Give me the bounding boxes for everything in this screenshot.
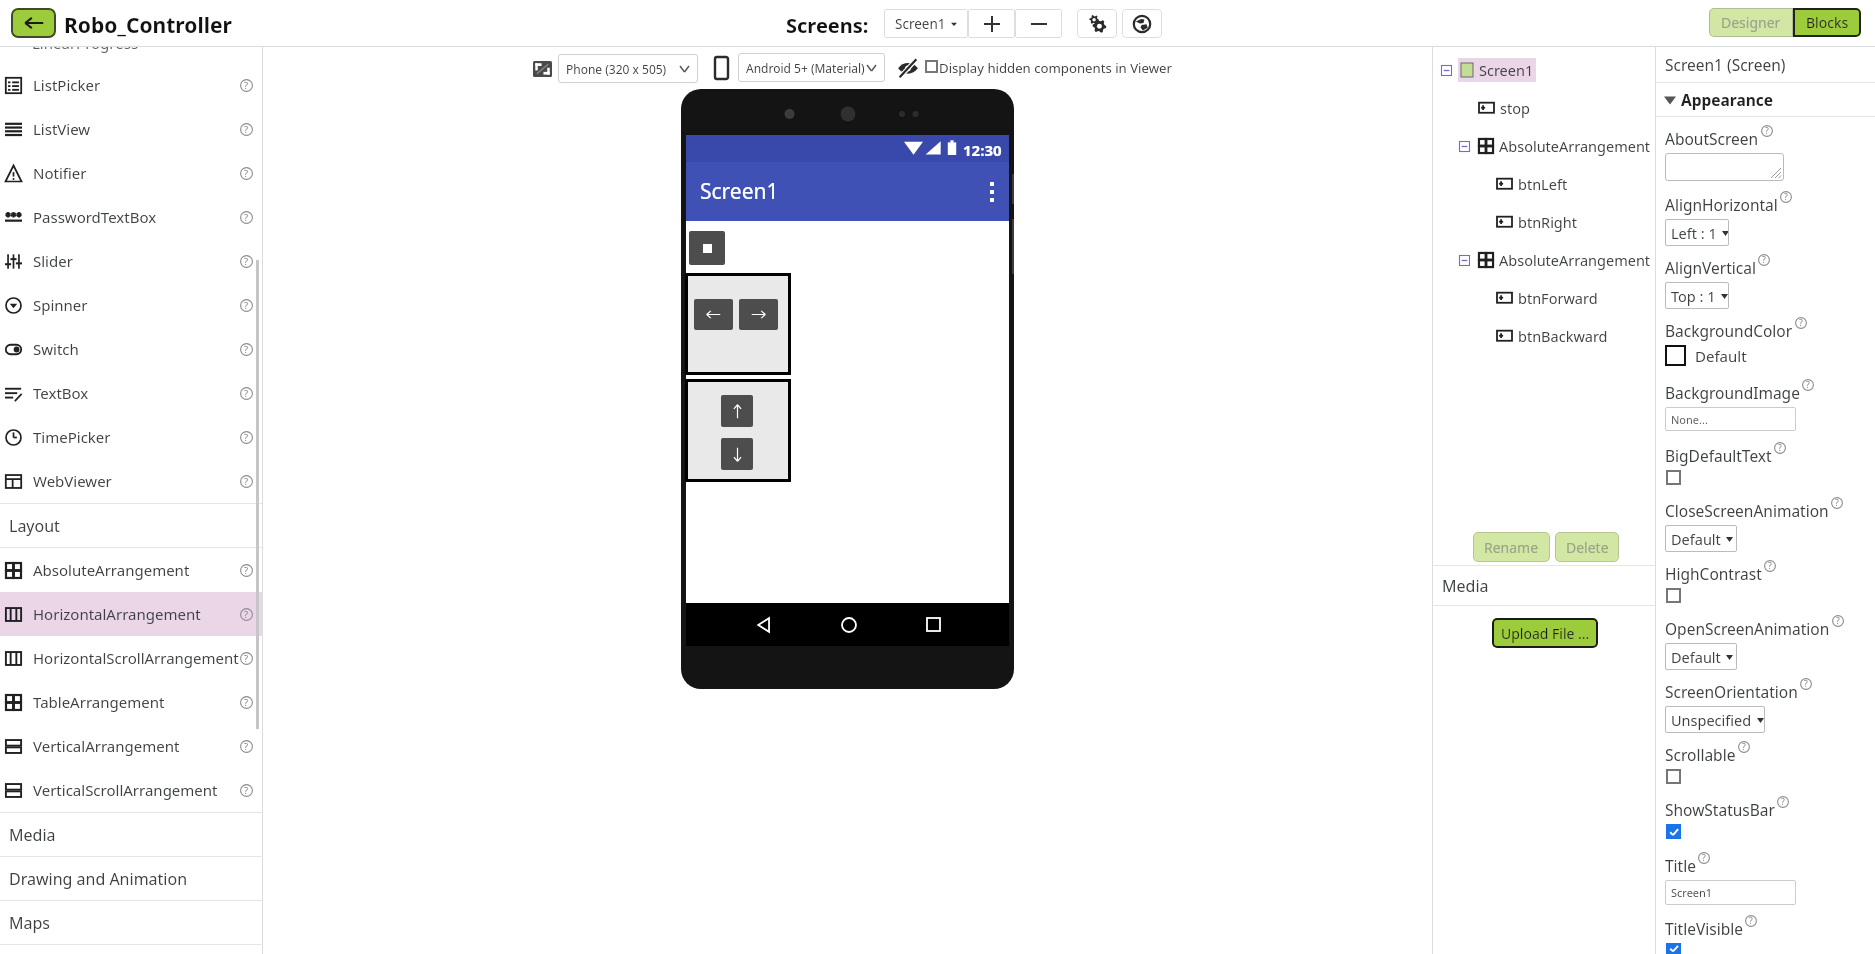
staticText: stop xyxy=(1500,98,1530,118)
button[interactable]: Delete xyxy=(1555,532,1619,562)
button[interactable]: left xyxy=(694,299,733,330)
staticText: Default xyxy=(1671,647,1721,667)
button[interactable]: globe xyxy=(1122,9,1162,38)
button[interactable]: toggle xyxy=(1666,769,1681,784)
button[interactable]: WebViewer xyxy=(0,459,262,503)
staticText: ? xyxy=(244,696,249,709)
staticText: ? xyxy=(1835,497,1839,509)
staticText: ? xyxy=(1768,560,1772,572)
button[interactable]: gear xyxy=(1077,9,1117,38)
button[interactable]: ListPicker xyxy=(0,63,262,107)
staticText: 12:30 xyxy=(963,140,1002,160)
button[interactable]: Layout xyxy=(0,504,262,547)
button[interactable]: Media xyxy=(0,813,262,856)
button[interactable]: toggle xyxy=(1666,943,1681,954)
staticText: Delete xyxy=(1566,538,1609,557)
button[interactable]: Spinner xyxy=(0,283,262,327)
staticText: Title xyxy=(1665,855,1696,876)
staticText: None... xyxy=(1671,412,1708,427)
staticText: HorizontalArrangement xyxy=(33,604,201,624)
staticText: Drawing and Animation xyxy=(9,868,188,890)
staticText: CloseScreenAnimation xyxy=(1665,500,1829,521)
staticText: ? xyxy=(1702,852,1706,864)
staticText: ? xyxy=(244,299,249,312)
button[interactable]: VerticalScrollArrangement xyxy=(0,768,262,812)
button[interactable]: right xyxy=(739,299,778,330)
button[interactable]: AbsoluteArrangement xyxy=(1433,127,1655,165)
button[interactable]: Unspecified xyxy=(1665,706,1765,733)
staticText: VerticalScrollArrangement xyxy=(33,780,218,800)
staticText: Screen1 xyxy=(1671,885,1713,900)
button[interactable]: minus xyxy=(1015,9,1062,38)
button[interactable]: btnForward xyxy=(1433,279,1655,317)
button[interactable]: Top : 1 xyxy=(1665,282,1729,309)
staticText: ? xyxy=(244,475,249,488)
button[interactable]: Screen1 xyxy=(1433,51,1655,89)
button[interactable]: up xyxy=(721,395,753,427)
staticText: Screens: xyxy=(786,12,869,39)
button[interactable]: btnBackward xyxy=(1433,317,1655,355)
staticText: Maps xyxy=(9,912,50,934)
staticText: Layout xyxy=(9,515,60,537)
button[interactable]: ListView xyxy=(0,107,262,151)
button[interactable]: Appearance xyxy=(1656,83,1875,116)
button[interactable]: Phone (320 x 505) xyxy=(558,54,698,83)
button[interactable]: Screen1 xyxy=(884,9,968,38)
button[interactable]: Back xyxy=(11,8,56,38)
other: Home xyxy=(841,617,857,633)
button[interactable]: AbsoluteArrangement xyxy=(0,548,262,592)
staticText: TimePicker xyxy=(33,427,111,447)
button[interactable]: toggle xyxy=(1666,824,1681,839)
staticText: ? xyxy=(1778,442,1782,454)
button[interactable]: Slider xyxy=(0,239,262,283)
button[interactable]: PasswordTextBox xyxy=(0,195,262,239)
staticText: btnBackward xyxy=(1518,326,1608,346)
staticText: Appearance xyxy=(1681,89,1774,110)
button[interactable]: Default xyxy=(1665,525,1737,552)
button[interactable]: btnRight xyxy=(1433,203,1655,241)
button[interactable]: VerticalArrangement xyxy=(0,724,262,768)
button[interactable]: TableArrangement xyxy=(0,680,262,724)
button[interactable]: Media xyxy=(1433,566,1655,605)
button[interactable]: Left : 1 xyxy=(1665,219,1729,246)
staticText: Designer xyxy=(1721,13,1781,32)
button[interactable]: TimePicker xyxy=(0,415,262,459)
staticText: ListPicker xyxy=(33,75,101,95)
staticText: Spinner xyxy=(33,295,88,315)
button[interactable]: Maps xyxy=(0,901,262,944)
button[interactable]: Drawing and Animation xyxy=(0,857,262,900)
button[interactable]: stop xyxy=(1433,89,1655,127)
staticText: ? xyxy=(244,740,249,753)
button[interactable]: Upload File ... xyxy=(1492,618,1598,648)
button[interactable]: Default xyxy=(1665,643,1737,670)
button[interactable]: AbsoluteArrangement xyxy=(1433,241,1655,279)
button[interactable]: plus xyxy=(968,9,1015,38)
button[interactable]: btnLeft xyxy=(1433,165,1655,203)
staticText: Screen1 (Screen) xyxy=(1665,54,1786,75)
button[interactable]: down xyxy=(721,438,753,470)
staticText: ? xyxy=(1799,317,1803,329)
button[interactable]: toggle xyxy=(1666,470,1681,485)
staticText: AbsoluteArrangement xyxy=(1499,136,1651,156)
button[interactable]: TextBox xyxy=(0,371,262,415)
button[interactable]: Switch xyxy=(0,327,262,371)
staticText: VerticalArrangement xyxy=(33,736,180,756)
button[interactable]: Rename xyxy=(1473,532,1550,562)
staticText: ? xyxy=(244,608,249,621)
staticText: Unspecified xyxy=(1671,710,1752,730)
button[interactable]: Blocks xyxy=(1793,8,1861,37)
staticText: Phone (320 x 505) xyxy=(566,61,667,77)
button[interactable]: stop xyxy=(689,231,725,265)
button[interactable]: Android 5+ (Material) xyxy=(738,53,885,82)
button[interactable]: Designer xyxy=(1709,8,1793,37)
staticText: ? xyxy=(244,79,249,92)
button[interactable]: HorizontalArrangement xyxy=(0,592,262,636)
staticText: WebViewer xyxy=(33,471,112,491)
staticText: Screen1 xyxy=(1479,60,1534,80)
button[interactable]: toggle xyxy=(1666,588,1681,603)
staticText: ? xyxy=(1784,191,1788,203)
button[interactable]: Notifier xyxy=(0,151,262,195)
staticText: ? xyxy=(244,167,249,180)
staticText: btnForward xyxy=(1518,288,1598,308)
button[interactable]: HorizontalScrollArrangement xyxy=(0,636,262,680)
